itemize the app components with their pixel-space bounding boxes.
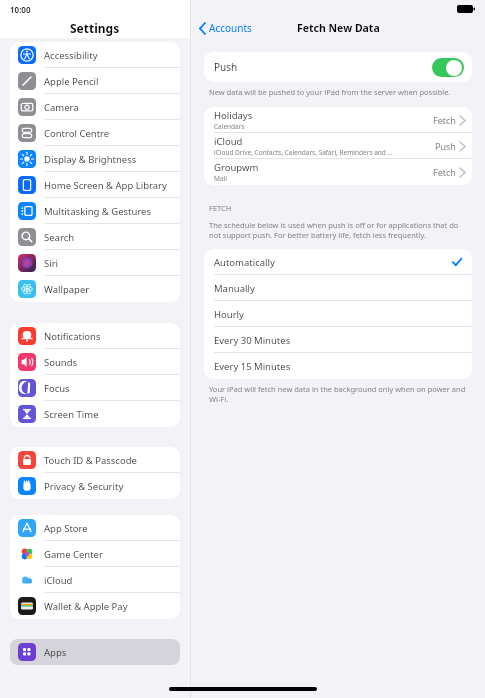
staticText: Notifications xyxy=(44,330,101,343)
button[interactable]: Groupwm xyxy=(204,159,472,185)
staticText: Focus xyxy=(44,382,70,395)
button[interactable]: Privacy & Security xyxy=(10,473,180,499)
staticText: Automatically xyxy=(214,256,275,269)
button[interactable]: Home Screen & App Library xyxy=(10,172,180,198)
button[interactable]: Display & Brightness xyxy=(10,146,180,172)
button[interactable]: Touch ID & Passcode xyxy=(10,447,180,473)
button[interactable]: Multitasking & Gestures xyxy=(10,198,180,224)
staticText: Calendars xyxy=(214,122,245,131)
staticText: Camera xyxy=(44,101,79,114)
staticText: Apple Pencil xyxy=(44,75,99,88)
button[interactable]: Wallet & Apple Pay xyxy=(10,593,180,619)
staticText: Touch ID & Passcode xyxy=(44,454,137,467)
button[interactable]: Accessibility xyxy=(10,42,180,68)
button[interactable]: Apps xyxy=(10,639,180,665)
staticText: Hourly xyxy=(214,308,244,321)
staticText: The schedule below is used when push is … xyxy=(209,220,472,240)
button[interactable]: Hourly xyxy=(204,301,472,327)
staticText: Fetch xyxy=(433,114,456,126)
staticText: New data will be pushed to your iPad fro… xyxy=(209,87,451,97)
staticText: Mail xyxy=(214,174,227,183)
staticText: Multitasking & Gestures xyxy=(44,205,152,218)
button[interactable]: Apple Pencil xyxy=(10,68,180,94)
staticText: Search xyxy=(44,231,75,244)
staticText: Sounds xyxy=(44,356,78,369)
staticText: Manually xyxy=(214,282,255,295)
staticText: Game Center xyxy=(44,548,103,561)
button[interactable]: App Store xyxy=(10,515,180,541)
staticText: Fetch New Data xyxy=(297,21,380,35)
button[interactable]: iCloud xyxy=(204,133,472,159)
staticText: Wallet & Apple Pay xyxy=(44,600,128,613)
button[interactable]: Holidays xyxy=(204,107,472,133)
button[interactable]: Control Centre xyxy=(10,120,180,146)
staticText: App Store xyxy=(44,522,88,535)
button[interactable]: Wallpaper xyxy=(10,276,180,302)
button[interactable]: iCloud xyxy=(10,567,180,593)
button[interactable]: Manually xyxy=(204,275,472,301)
staticText: Groupwm xyxy=(214,161,259,174)
staticText: Screen Time xyxy=(44,408,99,421)
staticText: iCloud xyxy=(44,574,73,587)
staticText: Wallpaper xyxy=(44,283,90,296)
button[interactable]: Every 30 Minutes xyxy=(204,327,472,353)
staticText: Control Centre xyxy=(44,127,110,140)
staticText: Every 15 Minutes xyxy=(214,360,291,373)
staticText: Push xyxy=(214,60,238,74)
other: Push toggle, on xyxy=(432,58,464,77)
button[interactable]: Automatically xyxy=(204,249,472,275)
staticText: Apps xyxy=(44,646,67,659)
staticText: Every 30 Minutes xyxy=(214,334,291,347)
staticText: Your iPad will fetch new data in the bac… xyxy=(209,384,472,404)
staticText: FETCH xyxy=(209,203,232,213)
button[interactable]: Accounts xyxy=(197,19,254,37)
button[interactable]: Screen Time xyxy=(10,401,180,427)
button[interactable]: Game Center xyxy=(10,541,180,567)
button[interactable]: Sounds xyxy=(10,349,180,375)
button[interactable]: Camera xyxy=(10,94,180,120)
other: Battery xyxy=(457,5,475,13)
staticText: iCloud xyxy=(214,135,243,148)
button[interactable]: Push xyxy=(204,52,472,82)
staticText: Display & Brightness xyxy=(44,153,137,166)
staticText: Holidays xyxy=(214,109,253,122)
staticText: Home Screen & App Library xyxy=(44,179,167,192)
button[interactable]: Notifications xyxy=(10,323,180,349)
button[interactable]: Siri xyxy=(10,250,180,276)
staticText: 10:00 xyxy=(10,4,31,15)
button[interactable]: Search xyxy=(10,224,180,250)
staticText: Settings xyxy=(70,20,120,36)
staticText: Accounts xyxy=(209,21,252,35)
staticText: iCloud Drive, Contacts, Calendars, Safar… xyxy=(214,148,394,157)
button[interactable]: Every 15 Minutes xyxy=(204,353,472,379)
staticText: Privacy & Security xyxy=(44,480,124,493)
staticText: Siri xyxy=(44,257,59,270)
staticText: Accessibility xyxy=(44,49,98,62)
staticText: Fetch xyxy=(433,166,456,178)
button[interactable]: Focus xyxy=(10,375,180,401)
staticText: Push xyxy=(435,140,456,152)
